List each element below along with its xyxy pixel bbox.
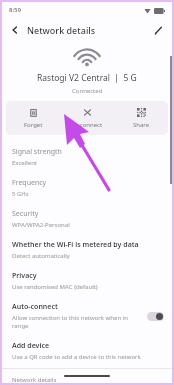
staticText: Share xyxy=(133,121,150,129)
button[interactable]: Add device xyxy=(2,337,172,365)
staticText: Connected xyxy=(72,87,103,95)
staticText: Frequency xyxy=(12,178,47,188)
staticText: Disconnect xyxy=(71,121,103,129)
button[interactable]: Edit xyxy=(148,20,168,40)
staticText: 8:59 xyxy=(9,6,21,14)
staticText: Add device xyxy=(12,341,50,351)
staticText: 5 GHz xyxy=(12,190,29,198)
button[interactable]: Whether the Wi-Fi is metered by data xyxy=(2,236,172,264)
button[interactable]: Auto-connect toggle xyxy=(147,312,164,321)
staticText: WPA/WPA2-Personal xyxy=(12,221,70,229)
button[interactable]: Disconnect xyxy=(60,103,114,134)
staticText: Detect automatically xyxy=(12,252,70,260)
button[interactable]: Signal strength xyxy=(2,143,172,171)
button[interactable]: Share xyxy=(114,103,168,134)
button[interactable]: Back xyxy=(5,20,25,40)
staticText: Network details xyxy=(12,376,57,383)
staticText: Security xyxy=(12,209,39,219)
staticText: Network details xyxy=(27,24,96,36)
button[interactable]: Frequency xyxy=(2,174,172,202)
staticText: Rastogi V2 Central | 5 G xyxy=(37,72,137,84)
staticText: Forget xyxy=(24,121,43,129)
button[interactable]: Security xyxy=(2,205,172,233)
button[interactable]: Auto-connect xyxy=(2,298,172,334)
staticText: Use a QR code to add a device to this ne… xyxy=(12,353,141,361)
staticText: Signal strength xyxy=(12,147,62,157)
staticText: Allow connection to this network when in… xyxy=(12,314,143,330)
button[interactable]: Privacy xyxy=(2,267,172,295)
staticText: Auto-connect xyxy=(12,302,58,312)
staticText: Use randomised MAC (default) xyxy=(12,283,98,291)
staticText: Privacy xyxy=(12,271,37,281)
staticText: Whether the Wi-Fi is metered by data xyxy=(12,240,139,250)
button[interactable]: Forget xyxy=(6,103,60,134)
staticText: Excellent xyxy=(12,159,38,167)
